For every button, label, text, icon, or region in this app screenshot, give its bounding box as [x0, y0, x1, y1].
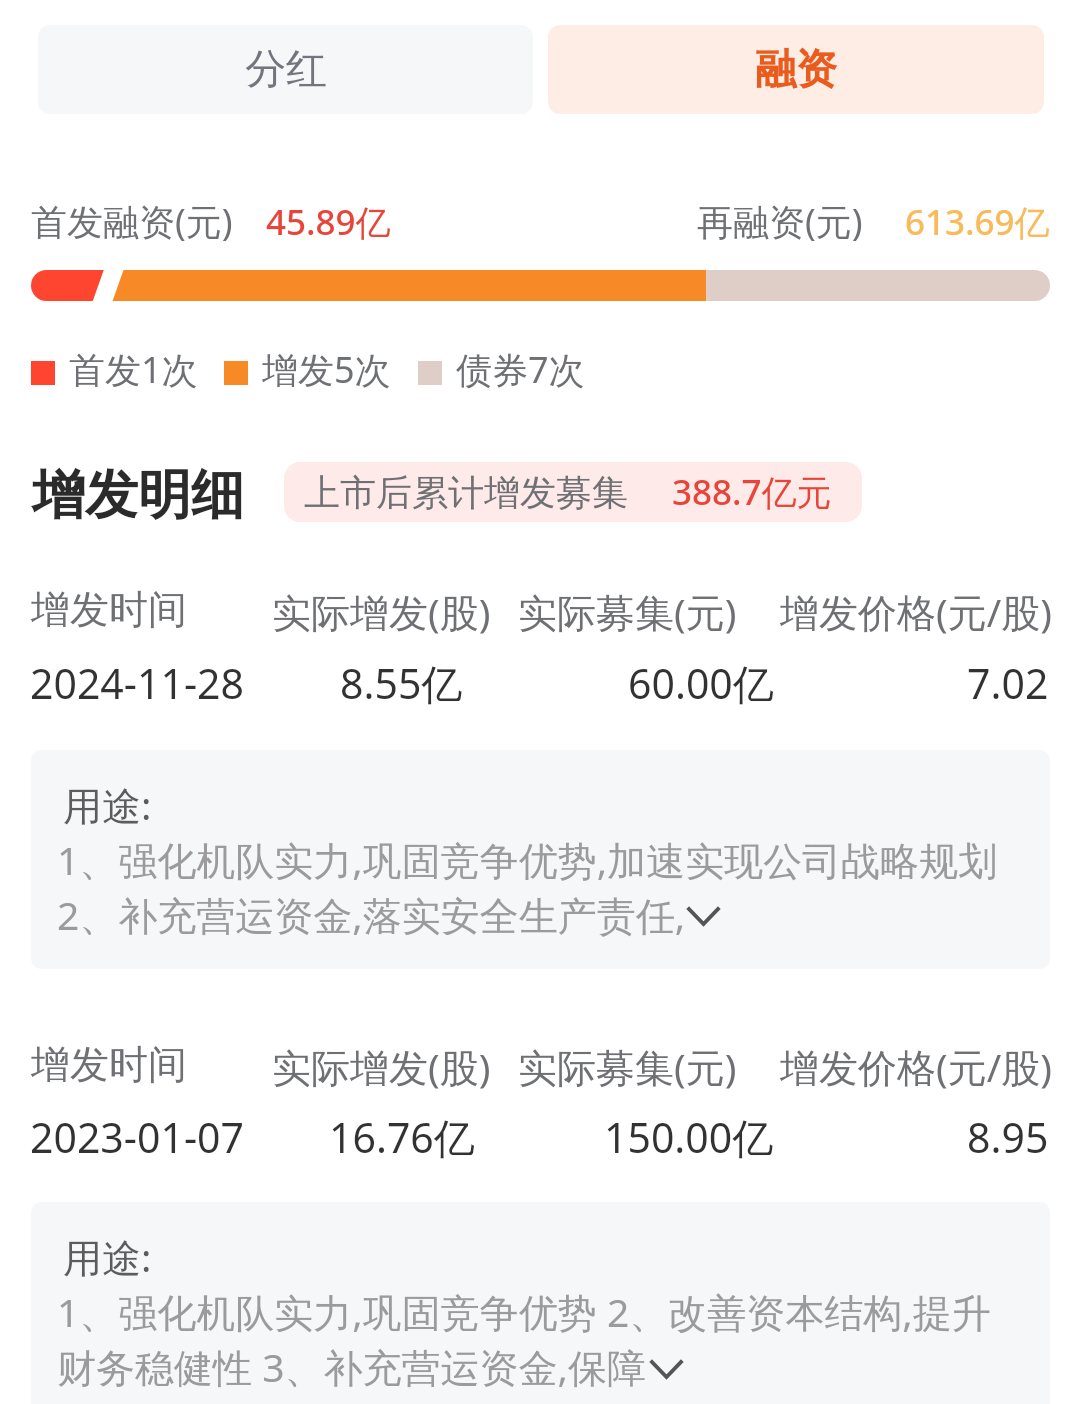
staticText: 增发时间 — [31, 1040, 187, 1089]
staticText: 增发明细 — [32, 462, 244, 529]
staticText: 实际增发(股) — [272, 1040, 491, 1093]
staticText: 增发时间 — [31, 585, 187, 634]
button[interactable]: 分红 — [38, 25, 533, 114]
staticText: 实际增发(股) — [272, 585, 491, 638]
staticText: 2024-11-28 — [30, 655, 245, 711]
staticText: 60.00亿 — [628, 655, 774, 711]
button[interactable]: 用途: — [31, 1202, 1050, 1404]
button[interactable]: 融资 — [548, 25, 1044, 114]
staticText: 16.76亿 — [329, 1109, 475, 1165]
staticText: 8.55亿 — [340, 655, 463, 711]
staticText: 增发价格(元/股) — [780, 585, 1052, 638]
staticText: 首发融资(元) — [31, 197, 233, 246]
staticText: 债券7次 — [456, 345, 585, 394]
staticText: 150.00亿 — [604, 1109, 774, 1165]
staticText: 7.02 — [967, 655, 1049, 711]
staticText: 实际募集(元) — [518, 1040, 737, 1093]
staticText: 1、强化机队实力,巩固竞争优势,加速实现公司战略规划 2、补充营运资金,落实安全… — [57, 833, 998, 941]
button[interactable]: 展开 — [650, 1360, 683, 1379]
staticText: 再融资(元) — [697, 197, 863, 246]
staticText: 2023-01-07 — [30, 1109, 245, 1165]
button[interactable]: 增发5次 — [224, 345, 391, 394]
staticText: 融资 — [755, 44, 837, 96]
staticText: 上市后累计增发募集 — [304, 470, 628, 515]
button[interactable]: 首发1次 — [31, 345, 198, 394]
staticText: 实际募集(元) — [518, 585, 737, 638]
staticText: 分红 — [245, 44, 327, 96]
staticText: 用途: — [63, 1230, 152, 1283]
button[interactable]: 债券7次 — [418, 345, 585, 394]
staticText: 388.7亿元 — [672, 468, 832, 516]
staticText: 用途: — [63, 778, 152, 831]
staticText: 1、强化机队实力,巩固竞争优势 2、改善资本结构,提升 财务稳健性 3、补充营运… — [57, 1285, 991, 1393]
button[interactable]: 上市后累计增发募集 — [284, 462, 862, 522]
staticText: 45.89亿 — [266, 198, 391, 246]
button[interactable]: 展开 — [687, 907, 720, 926]
button[interactable]: 用途: — [31, 750, 1050, 969]
staticText: 613.69亿 — [905, 198, 1050, 246]
staticText: 8.95 — [967, 1109, 1049, 1165]
staticText: 增发价格(元/股) — [780, 1040, 1052, 1093]
staticText: 增发5次 — [262, 345, 391, 394]
staticText: 首发1次 — [69, 345, 198, 394]
